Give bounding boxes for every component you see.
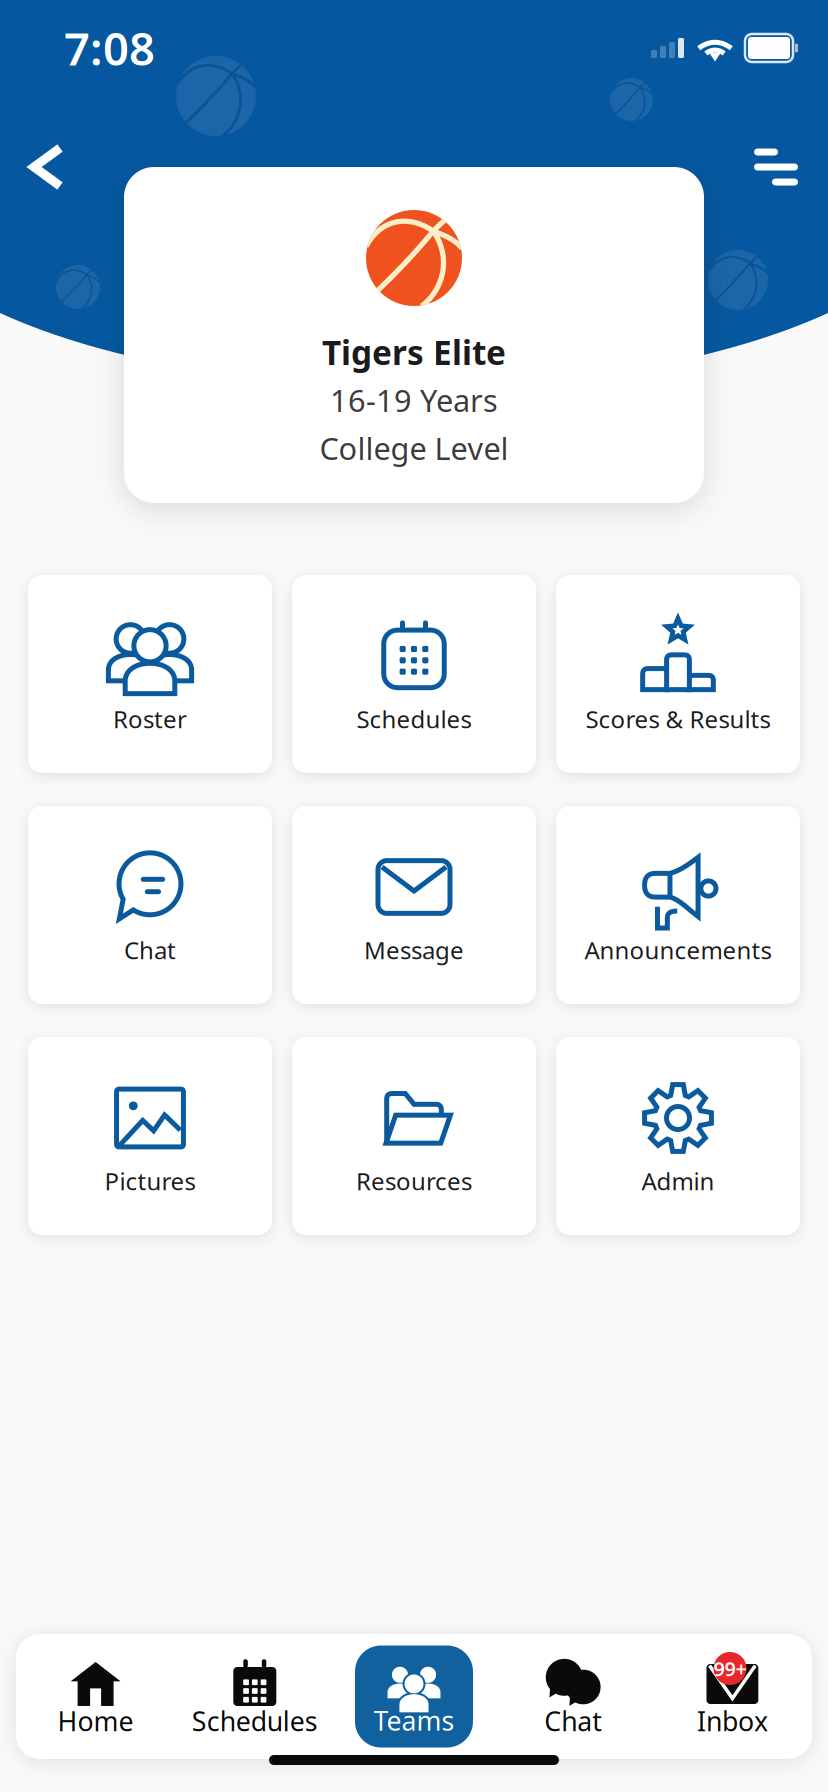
staticText: Schedules (192, 1703, 318, 1739)
staticText: Scores & Results (585, 703, 770, 735)
button[interactable]: Message (292, 806, 536, 1004)
staticText: Resources (356, 1165, 472, 1197)
button[interactable]: Schedules (292, 575, 536, 773)
staticText: Inbox (697, 1703, 768, 1739)
staticText: Chat (124, 934, 176, 966)
staticText: Chat (544, 1703, 602, 1739)
staticText: Roster (113, 703, 187, 735)
button[interactable]: Inbox (653, 1634, 812, 1759)
button[interactable]: Menu (736, 130, 816, 203)
staticText: 7:08 (64, 18, 155, 78)
button[interactable]: Scores & Results (556, 575, 800, 773)
staticText: Schedules (356, 703, 471, 735)
button[interactable]: Schedules (175, 1634, 334, 1759)
button[interactable]: Announcements (556, 806, 800, 1004)
staticText: Tigers Elite (322, 330, 506, 374)
button[interactable]: Back (12, 134, 82, 200)
button[interactable]: Resources (292, 1037, 536, 1235)
button[interactable]: Pictures (28, 1037, 272, 1235)
staticText: Message (364, 934, 464, 966)
staticText: College Level (319, 428, 508, 468)
staticText: 16-19 Years (330, 380, 498, 420)
staticText: 99+ (713, 1655, 746, 1682)
button[interactable]: Chat (494, 1634, 653, 1759)
button[interactable]: Admin (556, 1037, 800, 1235)
staticText: Pictures (104, 1165, 195, 1197)
staticText: Announcements (584, 934, 771, 966)
button[interactable]: Roster (28, 575, 272, 773)
staticText: Home (58, 1703, 134, 1739)
button[interactable]: Home (16, 1634, 175, 1759)
staticText: Teams (373, 1703, 454, 1738)
button[interactable]: Teams (334, 1645, 494, 1747)
staticText: Admin (641, 1165, 714, 1197)
button[interactable]: Chat (28, 806, 272, 1004)
